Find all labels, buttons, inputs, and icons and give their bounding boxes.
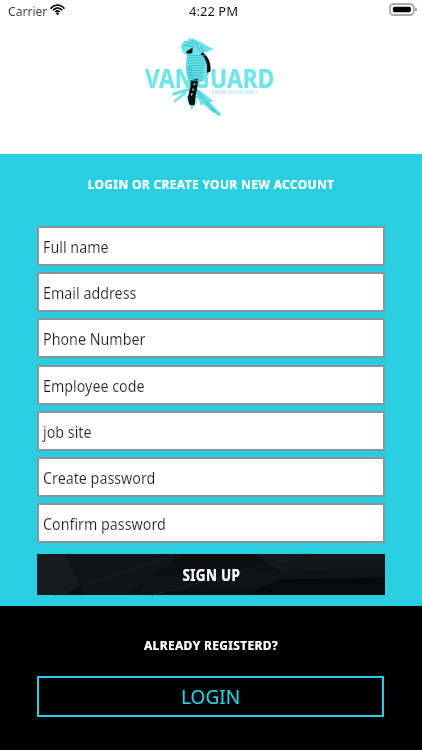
- staticText: Email address: [43, 281, 137, 304]
- button[interactable]: Phone Number: [37, 318, 385, 358]
- button[interactable]: Email address: [37, 272, 385, 312]
- button[interactable]: LOGIN: [37, 676, 384, 717]
- button[interactable]: SIGN UP: [37, 554, 385, 595]
- staticText: Confirm password: [43, 512, 166, 535]
- staticText: ADVANTAGE SECURITY: [212, 89, 258, 96]
- staticText: LOGIN: [181, 684, 241, 710]
- button[interactable]: Create password: [37, 457, 385, 497]
- staticText: Create password: [43, 466, 156, 489]
- staticText: 4:22 PM: [189, 2, 239, 20]
- button[interactable]: Confirm password: [37, 503, 385, 543]
- staticText: ALREADY REGISTERD?: [0, 637, 422, 653]
- staticText: Phone Number: [43, 327, 145, 350]
- button[interactable]: Employee code: [37, 365, 385, 405]
- staticText: SIGN UP: [182, 564, 240, 586]
- staticText: Carrier: [8, 2, 48, 20]
- staticText: Full name: [43, 235, 109, 258]
- staticText: VANGUARD: [145, 60, 275, 95]
- button[interactable]: Full name: [37, 226, 385, 266]
- button[interactable]: job site: [37, 411, 385, 451]
- staticText: job site: [43, 420, 92, 443]
- staticText: Employee code: [43, 374, 145, 397]
- staticText: LOGIN OR CREATE YOUR NEW ACCOUNT: [0, 176, 422, 192]
